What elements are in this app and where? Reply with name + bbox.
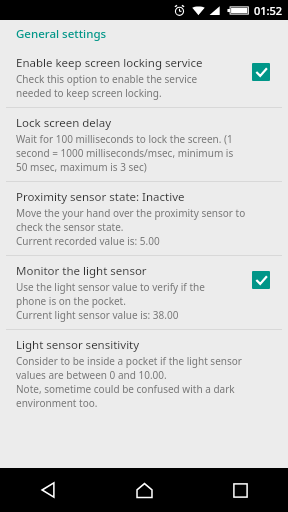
button[interactable]: Monitor the light sensor [0,256,288,329]
staticText: Current recorded value is: 5.00 [16,234,160,248]
staticText: second = 1000 milliseconds/msec, minimum… [16,146,234,160]
staticText: Light sensor sensitivity [16,337,140,353]
staticText: Note, sometime could be confused with a … [16,382,235,396]
button[interactable]: Toggle Monitor the light sensor [244,263,278,297]
button[interactable]: Enable keep screen locking service [0,48,288,107]
staticText: 50 msec, maximum is 3 sec) [16,160,147,174]
button[interactable]: Toggle Enable keep screen locking servic… [244,55,278,89]
staticText: environment too. [16,396,98,410]
staticText: needed to keep screen locking. [16,86,162,100]
button[interactable]: Lock screen delay [0,108,288,181]
staticText: Use the light sensor value to verify if … [16,280,205,294]
staticText: check the sensor state. [16,220,124,234]
staticText: Wait for 100 milliseconds to lock the sc… [16,132,233,146]
button[interactable]: Home [96,468,192,512]
staticText: phone is on the pocket. [16,294,126,308]
staticText: values are between 0 and 10.00. [16,368,167,382]
staticText: Lock screen delay [16,115,112,131]
staticText: Monitor the light sensor [16,263,147,279]
staticText: Consider to be inside a pocket if the li… [16,354,242,368]
staticText: Proximity sensor state: Inactive [16,189,185,205]
button[interactable]: Proximity sensor state: Inactive [0,182,288,255]
button[interactable]: Recents [192,468,288,512]
staticText: Enable keep screen locking service [16,55,203,71]
staticText: 01:52 [254,3,283,18]
staticText: Current light sensor value is: 38.00 [16,308,179,322]
staticText: General settings [16,26,107,42]
button[interactable]: Light sensor sensitivity [0,330,288,417]
button[interactable]: Back [0,468,96,512]
staticText: Move the your hand over the proximity se… [16,206,246,220]
staticText: Check this option to enable the service [16,72,198,86]
